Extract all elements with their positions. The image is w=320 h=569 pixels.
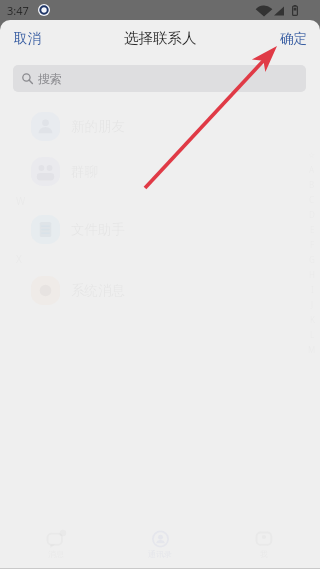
button[interactable]: 确定 (267, 20, 320, 56)
staticText: 取消 (14, 30, 41, 46)
staticText: 选择联系人 (124, 29, 197, 47)
button[interactable]: 群聊 (0, 149, 320, 194)
staticText: 3:47 (7, 3, 29, 18)
button[interactable]: 新的朋友 (0, 104, 320, 149)
staticText: 搜索 (38, 71, 62, 86)
button[interactable]: 搜索 (13, 65, 306, 92)
button[interactable]: 取消 (0, 20, 55, 56)
staticText: 确定 (280, 30, 307, 46)
